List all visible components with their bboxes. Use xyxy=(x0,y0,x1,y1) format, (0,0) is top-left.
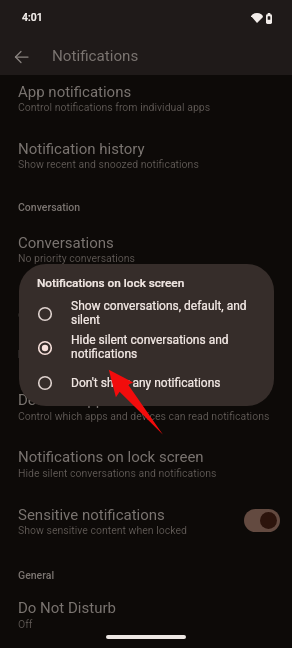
staticText: Show recent and snoozed notifications xyxy=(18,158,199,170)
staticText: Control which apps and devices can read … xyxy=(18,410,270,422)
staticText: Show conversations, default, and xyxy=(71,299,247,313)
button[interactable] xyxy=(0,383,292,431)
button[interactable] xyxy=(0,226,292,274)
staticText: Don't show any notifications xyxy=(71,376,221,390)
staticText: On / Can appear as floating icons xyxy=(18,309,174,321)
staticText: Off xyxy=(18,618,33,630)
staticText: Hide silent conversations and xyxy=(71,333,229,347)
staticText: Notifications xyxy=(52,47,139,65)
button[interactable] xyxy=(19,367,274,399)
button[interactable] xyxy=(0,440,292,488)
staticText: General xyxy=(18,569,55,581)
button[interactable]: Back xyxy=(2,38,40,76)
staticText: Conversation xyxy=(18,201,81,213)
staticText: Hide silent conversations and notificati… xyxy=(18,467,217,479)
staticText: Show sensitive content when locked xyxy=(18,524,187,536)
staticText: Notification history xyxy=(18,140,145,158)
button[interactable] xyxy=(0,591,292,639)
staticText: notifications xyxy=(71,347,138,361)
button[interactable] xyxy=(0,498,292,546)
staticText: Device & app notifications xyxy=(18,391,191,409)
staticText: Conversations xyxy=(18,234,114,252)
button[interactable] xyxy=(19,332,274,364)
button[interactable]: Sensitive notifications toggle xyxy=(244,509,280,532)
staticText: Do Not Disturb xyxy=(18,599,116,617)
staticText: Notifications on lock screen xyxy=(18,448,204,466)
staticText: Notifications on lock screen xyxy=(37,276,185,290)
staticText: Privacy xyxy=(18,348,53,360)
staticText: No priority conversations xyxy=(18,252,135,264)
staticText: Sensitive notifications xyxy=(18,506,165,524)
staticText: App notifications xyxy=(18,83,132,101)
staticText: Bubbles xyxy=(18,291,72,309)
button[interactable] xyxy=(0,75,292,123)
staticText: 4:01 xyxy=(22,11,43,23)
button[interactable] xyxy=(0,132,292,180)
button[interactable] xyxy=(19,298,274,330)
staticText: Control notifications from individual ap… xyxy=(18,101,211,113)
staticText: silent xyxy=(71,313,100,327)
button[interactable] xyxy=(0,283,292,331)
